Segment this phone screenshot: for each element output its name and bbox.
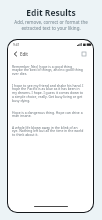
button[interactable]: Save (80, 50, 88, 58)
staticText: Edit (20, 51, 29, 57)
staticText: Edit Results (26, 7, 76, 19)
staticText: A whole life blown away in the blink of … (12, 125, 84, 137)
staticText: Remember, Ned, hope is a good thing, may… (12, 64, 83, 76)
staticText: I hope to see my friend and shake his ha… (12, 83, 84, 103)
button[interactable]: Back (12, 50, 19, 57)
staticText: Add, remove, correct or format the extra… (14, 19, 88, 31)
staticText: 9:41 (13, 43, 20, 47)
staticText: Hope is a dangerous thing. Hope can driv… (12, 110, 83, 118)
